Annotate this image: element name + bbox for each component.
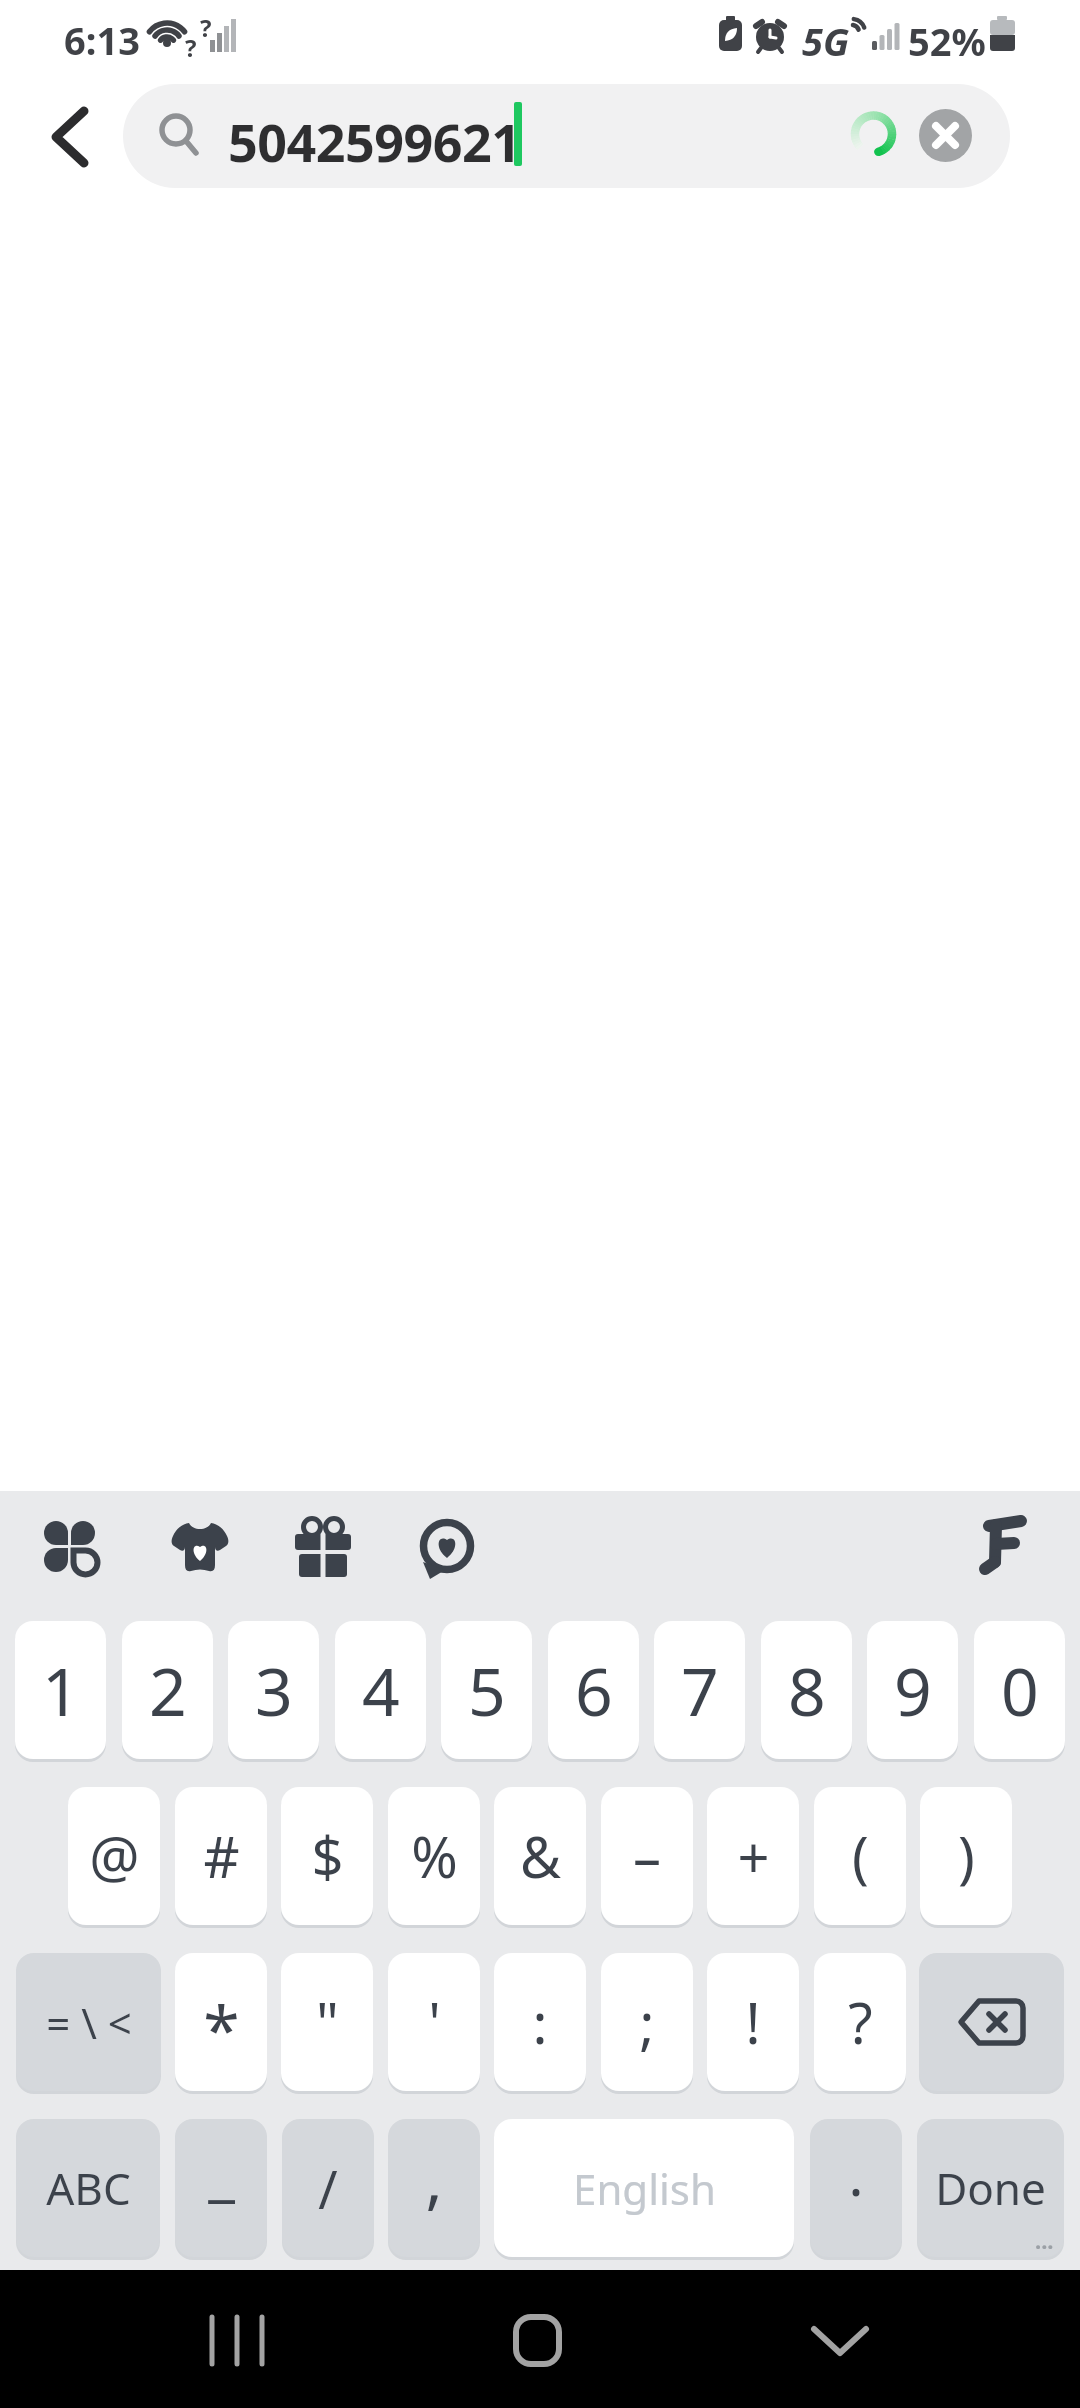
button[interactable] (919, 109, 972, 162)
staticText: ! (745, 1984, 761, 2060)
staticText: 9 (894, 1645, 932, 1735)
staticText: = \ < (46, 1994, 132, 2051)
staticText: 2 (149, 1645, 187, 1735)
staticText: & (520, 1818, 561, 1894)
button[interactable]: @ (68, 1787, 160, 1925)
button[interactable]: % (388, 1787, 480, 1925)
button[interactable]: , (388, 2119, 480, 2257)
staticText: 5G (802, 15, 850, 67)
button[interactable]: 9 (867, 1621, 958, 1759)
button[interactable] (40, 105, 100, 169)
button[interactable]: Done (917, 2119, 1064, 2257)
button[interactable]: 4 (335, 1621, 426, 1759)
button[interactable]: 3 (228, 1621, 319, 1759)
button[interactable]: # (175, 1787, 267, 1925)
button[interactable] (186, 2292, 286, 2386)
button[interactable]: ; (601, 1953, 693, 2091)
button[interactable]: 5042599621 (123, 84, 1010, 188)
button[interactable]: 0 (974, 1621, 1065, 1759)
staticText: @ (89, 1818, 140, 1894)
staticText: 3 (255, 1645, 293, 1735)
button[interactable]: / (282, 2119, 374, 2257)
staticText: ' (428, 1984, 441, 2060)
button[interactable]: ' (388, 1953, 480, 2091)
button[interactable] (170, 1521, 230, 1577)
staticText: , (425, 2135, 443, 2222)
button[interactable]: _ (175, 2119, 267, 2257)
button[interactable]: . (810, 2119, 902, 2257)
button[interactable]: $ (281, 1787, 373, 1925)
button[interactable]: = \ < (16, 1953, 161, 2091)
staticText: ( (852, 1818, 869, 1894)
button[interactable]: 8 (761, 1621, 852, 1759)
button[interactable] (790, 2292, 890, 2386)
button[interactable]: " (281, 1953, 373, 2091)
button[interactable] (978, 1517, 1030, 1579)
staticText: ? (185, 31, 197, 64)
button[interactable]: 2 (122, 1621, 213, 1759)
staticText: 7 (681, 1645, 719, 1735)
button[interactable] (417, 1519, 477, 1579)
button[interactable]: 1 (15, 1621, 106, 1759)
button[interactable]: 5 (441, 1621, 532, 1759)
staticText: Done (935, 2158, 1046, 2218)
button[interactable]: & (494, 1787, 586, 1925)
button[interactable]: ABC (16, 2119, 160, 2257)
button[interactable]: English (494, 2119, 794, 2257)
button[interactable]: 7 (654, 1621, 745, 1759)
staticText: ABC (46, 2158, 131, 2218)
button[interactable] (293, 1517, 353, 1579)
staticText: 5042599621 (228, 106, 521, 177)
staticText: ) (958, 1818, 975, 1894)
staticText: ; (639, 1984, 655, 2060)
staticText: ... (1035, 2225, 1054, 2255)
staticText: 5 (468, 1645, 506, 1735)
staticText: 0 (1001, 1645, 1039, 1735)
button[interactable]: ? (814, 1953, 906, 2091)
button[interactable] (919, 1953, 1064, 2091)
button[interactable]: + (707, 1787, 799, 1925)
staticText: 6 (575, 1645, 613, 1735)
button[interactable]: ! (707, 1953, 799, 2091)
staticText: ? (848, 1984, 873, 2060)
staticText: : (532, 1984, 548, 2060)
staticText: 1 (42, 1645, 80, 1735)
button[interactable]: : (494, 1953, 586, 2091)
staticText: / (318, 2153, 338, 2224)
staticText: English (573, 2160, 716, 2217)
staticText: $ (311, 1818, 344, 1894)
staticText: + (737, 1818, 770, 1894)
staticText: % (411, 1818, 458, 1894)
staticText: 6:13 (64, 14, 140, 66)
staticText: 8 (788, 1645, 826, 1735)
staticText: . (848, 2136, 864, 2212)
button[interactable]: 6 (548, 1621, 639, 1759)
staticText: 4 (362, 1645, 400, 1735)
button[interactable] (42, 1521, 98, 1577)
button[interactable]: – (601, 1787, 693, 1925)
staticText: _ (208, 2131, 235, 2213)
staticText: 52% (908, 15, 986, 67)
staticText: " (316, 1984, 339, 2060)
staticText: * (203, 1983, 240, 2073)
button[interactable]: ) (920, 1787, 1012, 1925)
staticText: # (203, 1818, 240, 1894)
staticText: – (633, 1818, 661, 1894)
button[interactable]: ( (814, 1787, 906, 1925)
staticText: ? (200, 11, 212, 44)
button[interactable] (487, 2292, 587, 2386)
button[interactable]: * (175, 1953, 267, 2091)
